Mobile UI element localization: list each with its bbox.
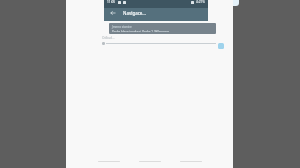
button[interactable]: Jmeno stanice <box>109 23 216 34</box>
staticText: 4:21% <box>196 0 205 4</box>
button[interactable]: Back <box>180 157 202 166</box>
button[interactable]: Home <box>139 157 161 166</box>
staticText: Jmeno stanice <box>112 25 132 29</box>
staticText: Odkud… <box>102 36 115 40</box>
staticText: Navigace… <box>123 10 146 16</box>
button[interactable]: Navigate up <box>108 8 117 17</box>
button[interactable]: Recent apps <box>98 157 120 166</box>
button[interactable]: Text selection handle <box>218 43 224 49</box>
staticText: 11:05 <box>107 0 116 4</box>
staticText: Praha hlavni nadrazi, Praha 1, Wilsonova <box>112 30 169 32</box>
